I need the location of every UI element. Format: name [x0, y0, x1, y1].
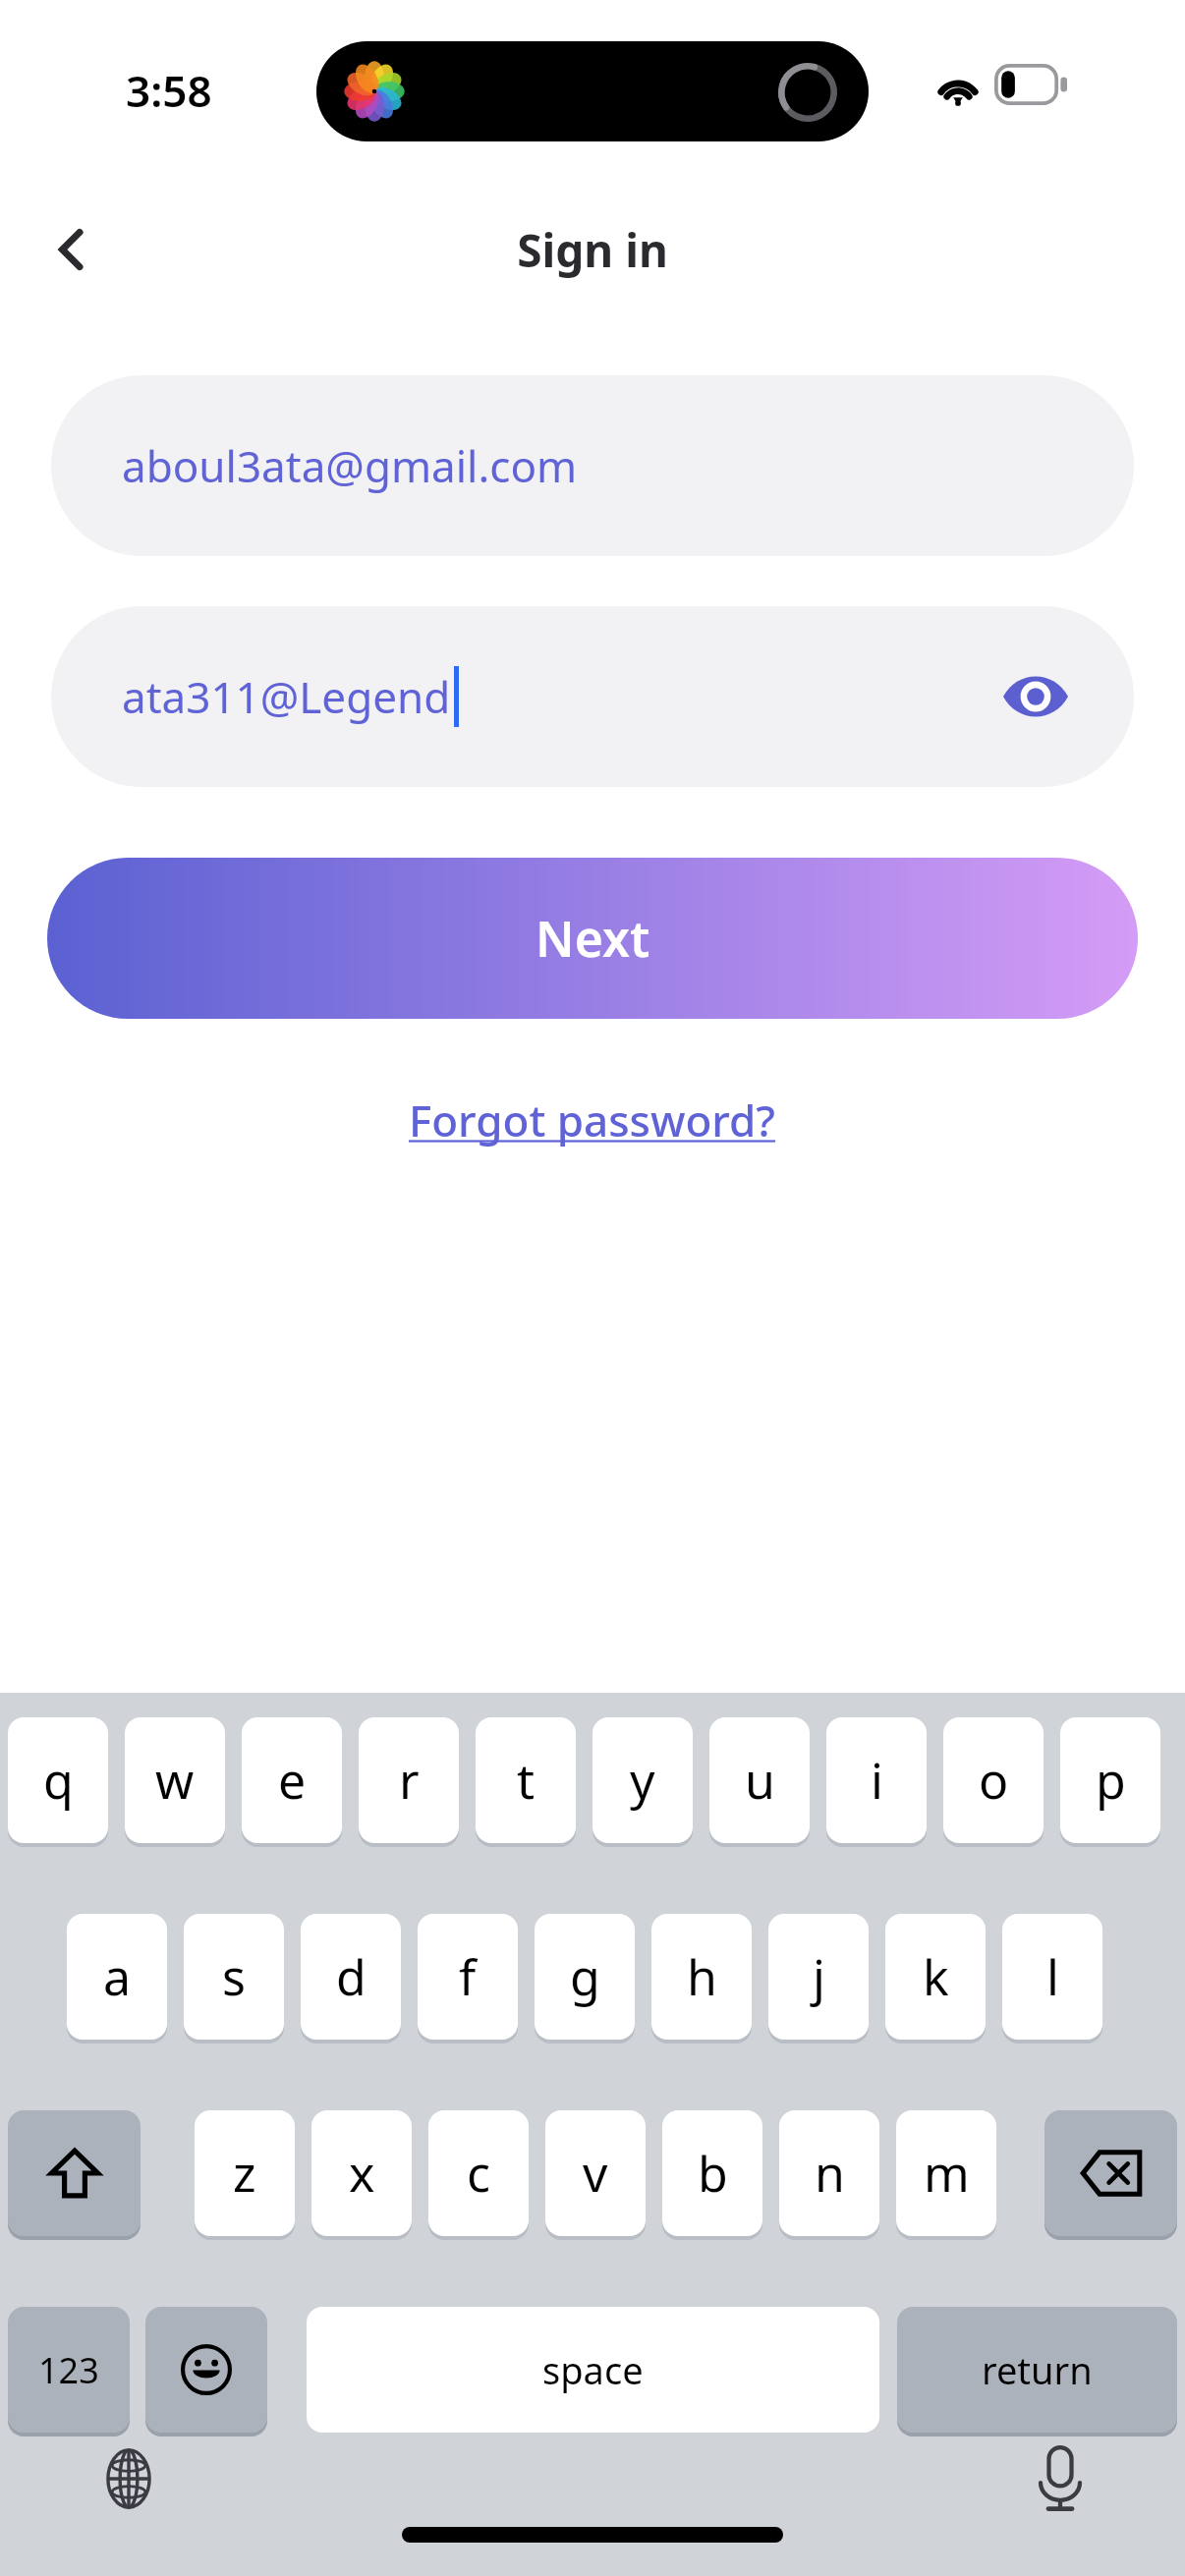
staticText: c — [467, 2140, 490, 2207]
staticText: ata311@Legend — [122, 667, 451, 726]
staticText: p — [1096, 1747, 1126, 1814]
button[interactable]: y — [592, 1717, 693, 1843]
staticText: y — [630, 1747, 655, 1814]
button[interactable]: Shift — [8, 2110, 141, 2236]
button[interactable]: r — [359, 1717, 459, 1843]
staticText: 3:58 — [126, 61, 212, 120]
button[interactable]: Dictation — [1018, 2436, 1102, 2521]
button[interactable]: Back — [28, 204, 118, 295]
button[interactable]: u — [709, 1717, 810, 1843]
button[interactable]: v — [545, 2110, 646, 2236]
button[interactable]: ata311@Legend — [51, 606, 1134, 787]
button[interactable]: f — [418, 1914, 518, 2040]
button[interactable]: p — [1060, 1717, 1160, 1843]
staticText: b — [698, 2140, 728, 2207]
staticText: Sign in — [517, 219, 668, 281]
button[interactable]: h — [651, 1914, 752, 2040]
button[interactable]: z — [195, 2110, 295, 2236]
button[interactable]: n — [779, 2110, 879, 2236]
button[interactable]: Show password — [994, 655, 1077, 738]
button[interactable]: o — [943, 1717, 1044, 1843]
button[interactable]: space — [307, 2307, 879, 2433]
button[interactable]: q — [8, 1717, 108, 1843]
button[interactable]: j — [768, 1914, 869, 2040]
staticText: l — [1046, 1943, 1059, 2010]
button[interactable]: aboul3ata@gmail.com — [51, 375, 1134, 556]
button[interactable]: Numbers — [8, 2307, 130, 2433]
button[interactable]: Return — [897, 2307, 1177, 2433]
staticText: q — [43, 1747, 74, 1814]
button[interactable]: a — [67, 1914, 167, 2040]
button[interactable]: x — [311, 2110, 412, 2236]
staticText: d — [336, 1943, 367, 2010]
staticText: aboul3ata@gmail.com — [122, 436, 578, 495]
button[interactable]: d — [301, 1914, 401, 2040]
staticText: k — [923, 1943, 949, 2010]
staticText: u — [745, 1747, 775, 1814]
staticText: t — [517, 1747, 536, 1814]
staticText: z — [233, 2140, 256, 2207]
button[interactable]: g — [535, 1914, 635, 2040]
staticText: g — [570, 1943, 600, 2010]
button[interactable]: Emoji — [145, 2307, 267, 2433]
button[interactable]: c — [428, 2110, 529, 2236]
staticText: Next — [536, 905, 650, 972]
staticText: v — [583, 2140, 608, 2207]
staticText: x — [349, 2140, 375, 2207]
button[interactable]: m — [896, 2110, 996, 2236]
button[interactable]: b — [662, 2110, 762, 2236]
staticText: r — [399, 1747, 420, 1814]
button[interactable]: l — [1002, 1914, 1102, 2040]
staticText: h — [687, 1943, 717, 2010]
staticText: f — [459, 1943, 477, 2010]
button[interactable]: w — [125, 1717, 225, 1843]
button[interactable]: e — [242, 1717, 342, 1843]
button[interactable]: s — [184, 1914, 284, 2040]
staticText: o — [979, 1747, 1009, 1814]
staticText: n — [815, 2140, 845, 2207]
staticText: space — [542, 2344, 644, 2395]
staticText: 123 — [38, 2346, 99, 2394]
button[interactable]: t — [476, 1717, 576, 1843]
button[interactable]: Backspace — [1044, 2110, 1177, 2236]
button[interactable]: Change keyboard — [86, 2436, 171, 2521]
button[interactable]: Next — [47, 858, 1138, 1019]
staticText: m — [924, 2140, 970, 2207]
button[interactable]: i — [826, 1717, 927, 1843]
staticText: i — [871, 1747, 883, 1814]
staticText: return — [982, 2344, 1093, 2395]
staticText: w — [155, 1747, 195, 1814]
staticText: s — [222, 1943, 246, 2010]
button[interactable]: k — [885, 1914, 986, 2040]
staticText: Forgot password? — [409, 1091, 776, 1149]
staticText: j — [813, 1943, 825, 2010]
staticText: e — [278, 1747, 307, 1814]
button[interactable]: Forgot password? — [395, 1083, 790, 1157]
staticText: a — [103, 1943, 132, 2010]
